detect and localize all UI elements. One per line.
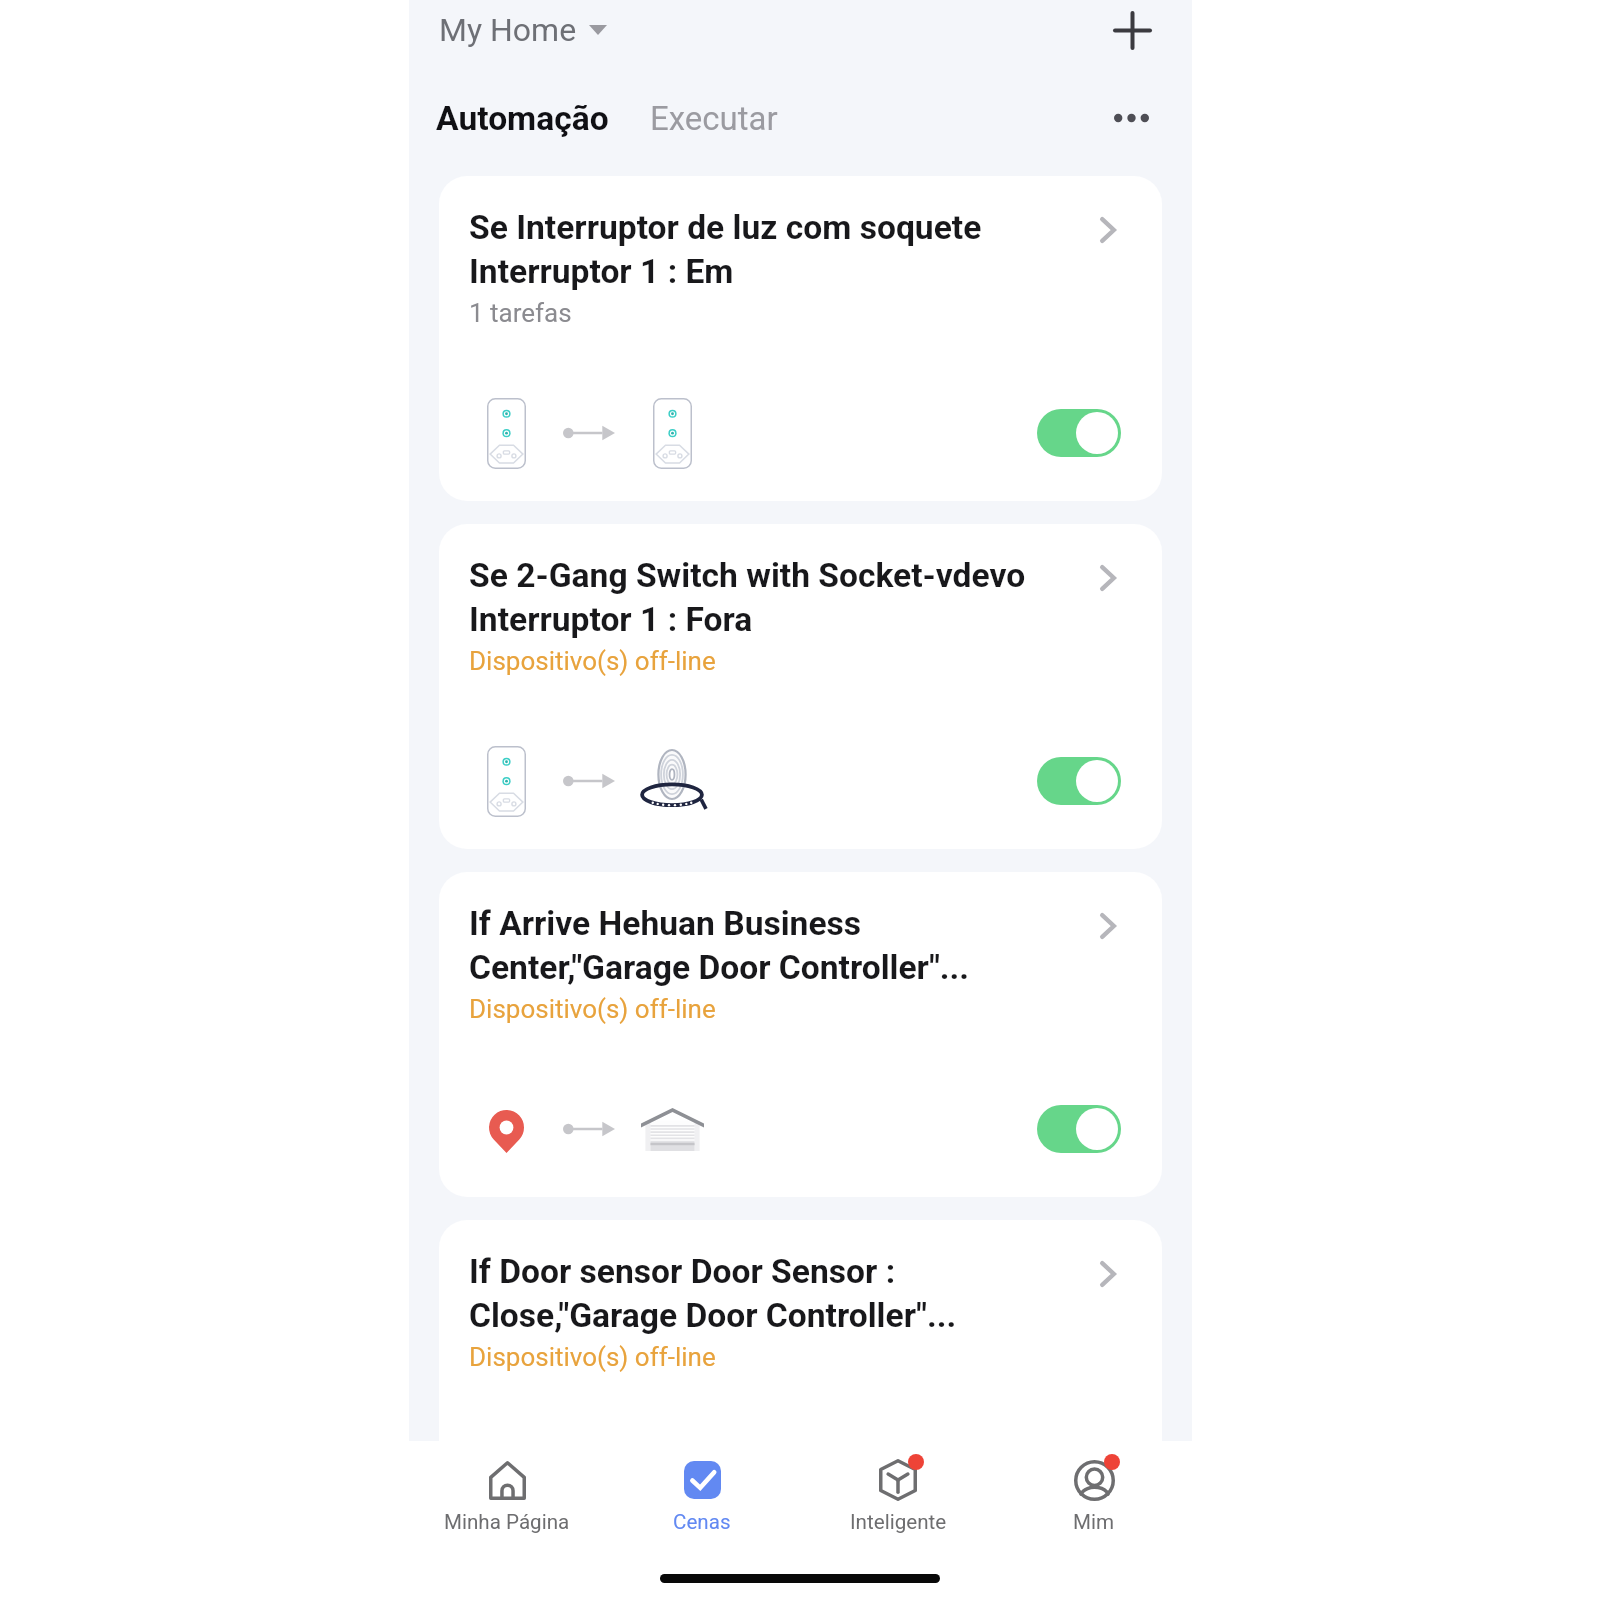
button[interactable]: Add bbox=[1102, 0, 1162, 60]
button[interactable]: More options bbox=[1101, 88, 1161, 148]
staticText: Mim bbox=[1073, 1510, 1115, 1534]
staticText: Cenas bbox=[673, 1510, 731, 1534]
button[interactable]: Toggle automation bbox=[1037, 409, 1121, 457]
button[interactable]: If Door sensor Door Sensor : bbox=[439, 1220, 1162, 1545]
staticText: If Arrive Hehuan Business bbox=[469, 904, 862, 943]
staticText: Center,"Garage Door Controller"... bbox=[469, 948, 970, 987]
staticText: Close,"Garage Door Controller"... bbox=[469, 1296, 957, 1335]
staticText: Dispositivo(s) off-line bbox=[469, 1342, 716, 1372]
staticText: Executar bbox=[650, 99, 778, 138]
staticText: 1 tarefas bbox=[469, 298, 572, 328]
staticText: Automação bbox=[436, 99, 609, 138]
button[interactable]: Se Interruptor de luz com soquete bbox=[439, 176, 1162, 501]
button[interactable]: Mim bbox=[996, 1441, 1192, 1557]
button[interactable]: My Home bbox=[439, 11, 607, 49]
button[interactable]: Cenas bbox=[604, 1441, 800, 1557]
staticText: Inteligente bbox=[850, 1510, 947, 1534]
staticText: Se Interruptor de luz com soquete bbox=[469, 208, 982, 247]
staticText: Interruptor 1 : Fora bbox=[469, 600, 753, 639]
staticText: Dispositivo(s) off-line bbox=[469, 994, 716, 1024]
staticText: If Door sensor Door Sensor : bbox=[469, 1252, 896, 1291]
button[interactable]: Toggle automation bbox=[1037, 757, 1121, 805]
button[interactable]: Toggle automation bbox=[1037, 1453, 1121, 1501]
button[interactable]: Inteligente bbox=[800, 1441, 996, 1557]
button[interactable]: If Arrive Hehuan Business bbox=[439, 872, 1162, 1197]
button[interactable]: Se 2-Gang Switch with Socket-vdevo bbox=[439, 524, 1162, 849]
button[interactable]: Executar bbox=[650, 99, 778, 138]
staticText: Dispositivo(s) off-line bbox=[469, 646, 716, 676]
button[interactable]: Toggle automation bbox=[1037, 1105, 1121, 1153]
button[interactable]: Automação bbox=[436, 99, 609, 138]
button[interactable]: Minha Página bbox=[409, 1441, 604, 1557]
staticText: Minha Página bbox=[444, 1510, 570, 1534]
staticText: Interruptor 1 : Em bbox=[469, 252, 734, 291]
staticText: Se 2-Gang Switch with Socket-vdevo bbox=[469, 556, 1026, 595]
staticText: My Home bbox=[439, 11, 577, 49]
